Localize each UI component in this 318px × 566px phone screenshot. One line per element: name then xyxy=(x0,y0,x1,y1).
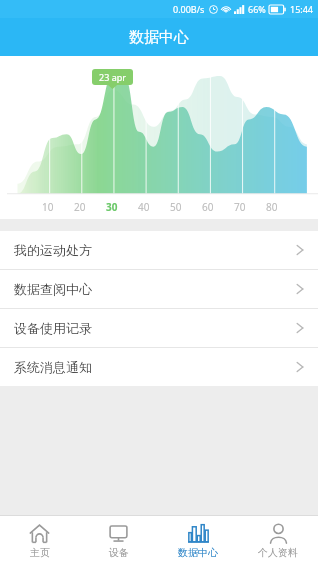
staticText: 数据查阅中心 xyxy=(14,281,92,297)
staticText: 66% xyxy=(248,3,266,15)
staticText: 10 xyxy=(42,200,54,214)
button[interactable]: 设备 xyxy=(79,516,158,566)
button[interactable]: 数据中心 xyxy=(158,516,238,566)
staticText: 0.00B/s xyxy=(173,3,205,15)
staticText: 数据中心 xyxy=(129,28,189,47)
staticText: 主页 xyxy=(30,546,50,559)
staticText: 30 xyxy=(106,200,118,214)
staticText: 40 xyxy=(138,200,150,214)
staticText: 我的运动处方 xyxy=(14,242,92,258)
button[interactable]: 个人资料 xyxy=(238,516,318,566)
staticText: 系统消息通知 xyxy=(14,359,92,375)
staticText: 50 xyxy=(170,200,182,214)
staticText: 23 apr xyxy=(99,71,126,83)
staticText: 个人资料 xyxy=(258,546,298,559)
staticText: 60 xyxy=(202,200,214,214)
staticText: 70 xyxy=(234,200,246,214)
button[interactable]: 数据查阅中心 xyxy=(0,270,318,308)
button[interactable]: 设备使用记录 xyxy=(0,309,318,347)
button[interactable]: 系统消息通知 xyxy=(0,348,318,386)
staticText: 20 xyxy=(74,200,86,214)
staticText: 设备 xyxy=(109,546,129,559)
staticText: 设备使用记录 xyxy=(14,320,92,336)
staticText: 15:44 xyxy=(290,3,314,15)
button[interactable]: 我的运动处方 xyxy=(0,231,318,269)
staticText: 80 xyxy=(266,200,278,214)
button[interactable]: 主页 xyxy=(0,516,79,566)
staticText: 数据中心 xyxy=(178,546,218,559)
